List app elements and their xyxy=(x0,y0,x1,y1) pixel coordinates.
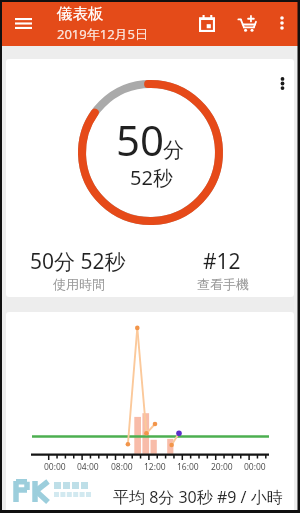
staticText: 50 xyxy=(116,111,165,168)
staticText: 儀表板 xyxy=(57,4,104,24)
staticText: 查看手機 xyxy=(197,276,249,292)
button[interactable]: Calendar xyxy=(187,3,227,43)
staticText: 平均 8分 30秒 #9 / 小時 xyxy=(113,486,283,508)
button[interactable]: 50分 52秒 xyxy=(6,241,150,297)
staticText: 16:00 xyxy=(177,461,199,473)
button[interactable]: More options xyxy=(266,7,298,39)
staticText: 00:00 xyxy=(244,461,266,473)
button[interactable]: Card menu xyxy=(270,71,294,95)
staticText: 2019年12月5日 xyxy=(57,25,149,43)
staticText: 50分 52秒 xyxy=(30,247,126,276)
staticText: 00:00 xyxy=(44,461,66,473)
staticText: 分 xyxy=(163,137,184,163)
staticText: 12:00 xyxy=(144,461,166,473)
staticText: #12 xyxy=(203,247,241,276)
staticText: 04:00 xyxy=(77,461,99,473)
button[interactable]: #12 xyxy=(150,241,294,297)
button[interactable]: Add to cart xyxy=(227,3,267,43)
staticText: 08:00 xyxy=(111,461,133,473)
staticText: 使用時間 xyxy=(53,276,105,292)
staticText: 52秒 xyxy=(130,164,173,191)
button[interactable]: Menu xyxy=(0,0,46,46)
staticText: 20:00 xyxy=(211,461,233,473)
